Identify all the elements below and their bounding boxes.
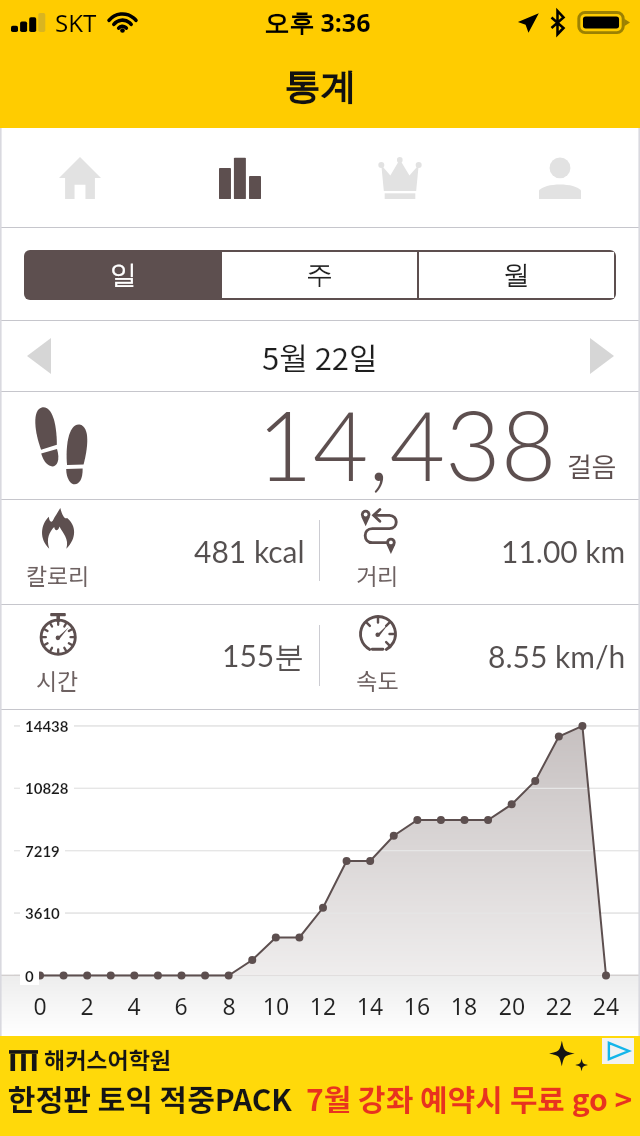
- staticText: 0: [10, 990, 70, 1021]
- staticText: 3610: [25, 904, 60, 922]
- button[interactable]: 칼로리: [0, 500, 319, 604]
- button[interactable]: Statistics: [160, 128, 320, 227]
- staticText: 8: [199, 990, 259, 1021]
- staticText: 2: [57, 990, 117, 1021]
- button[interactable]: Home: [0, 128, 160, 227]
- staticText: 7월 강좌 예약시 무료 go >: [306, 1076, 633, 1119]
- staticText: 속도: [356, 663, 399, 696]
- staticText: 481 kcal: [194, 533, 305, 569]
- staticText: 14,438: [257, 386, 557, 493]
- staticText: 12: [293, 990, 353, 1021]
- staticText: 11.00 km: [501, 533, 626, 569]
- staticText: 20: [482, 990, 542, 1021]
- button[interactable]: 주: [222, 252, 417, 298]
- staticText: 0: [25, 967, 34, 985]
- button[interactable]: Previous day: [0, 321, 77, 391]
- button[interactable]: 시간: [0, 605, 319, 709]
- button[interactable]: Profile: [480, 128, 640, 227]
- staticText: 걸음: [567, 446, 617, 485]
- staticText: 155분: [222, 637, 305, 676]
- staticText: 8.55 km/h: [488, 638, 626, 674]
- button[interactable]: Ranking: [320, 128, 480, 227]
- button[interactable]: 해커스어학원: [0, 1036, 640, 1136]
- staticText: 통계: [284, 64, 356, 109]
- button[interactable]: 속도: [320, 605, 640, 709]
- staticText: 14438: [25, 717, 69, 735]
- button[interactable]: 14,438: [0, 392, 640, 499]
- button[interactable]: 일: [26, 252, 220, 298]
- staticText: 24: [576, 990, 636, 1021]
- staticText: SKT: [55, 6, 97, 39]
- staticText: 7219: [25, 842, 60, 860]
- staticText: 칼로리: [26, 558, 90, 591]
- staticText: 22: [529, 990, 589, 1021]
- staticText: 주: [306, 258, 333, 292]
- button[interactable]: 월: [419, 252, 614, 298]
- button[interactable]: 거리: [320, 500, 640, 604]
- staticText: 5월 22일: [262, 334, 378, 379]
- staticText: 16: [387, 990, 447, 1021]
- staticText: 시간: [36, 663, 79, 696]
- staticText: 거리: [356, 558, 399, 591]
- staticText: 10: [246, 990, 306, 1021]
- staticText: 일: [110, 258, 137, 292]
- staticText: 한정판 토익 적중PACK: [8, 1076, 306, 1119]
- staticText: 오후 3:36: [264, 5, 371, 39]
- staticText: 해커스어학원: [44, 1042, 171, 1075]
- staticText: 18: [434, 990, 494, 1021]
- staticText: 14: [340, 990, 400, 1021]
- staticText: 6: [151, 990, 211, 1021]
- staticText: 월: [503, 258, 530, 292]
- button[interactable]: Next day: [563, 321, 640, 391]
- staticText: 4: [104, 990, 164, 1021]
- staticText: 10828: [25, 779, 69, 797]
